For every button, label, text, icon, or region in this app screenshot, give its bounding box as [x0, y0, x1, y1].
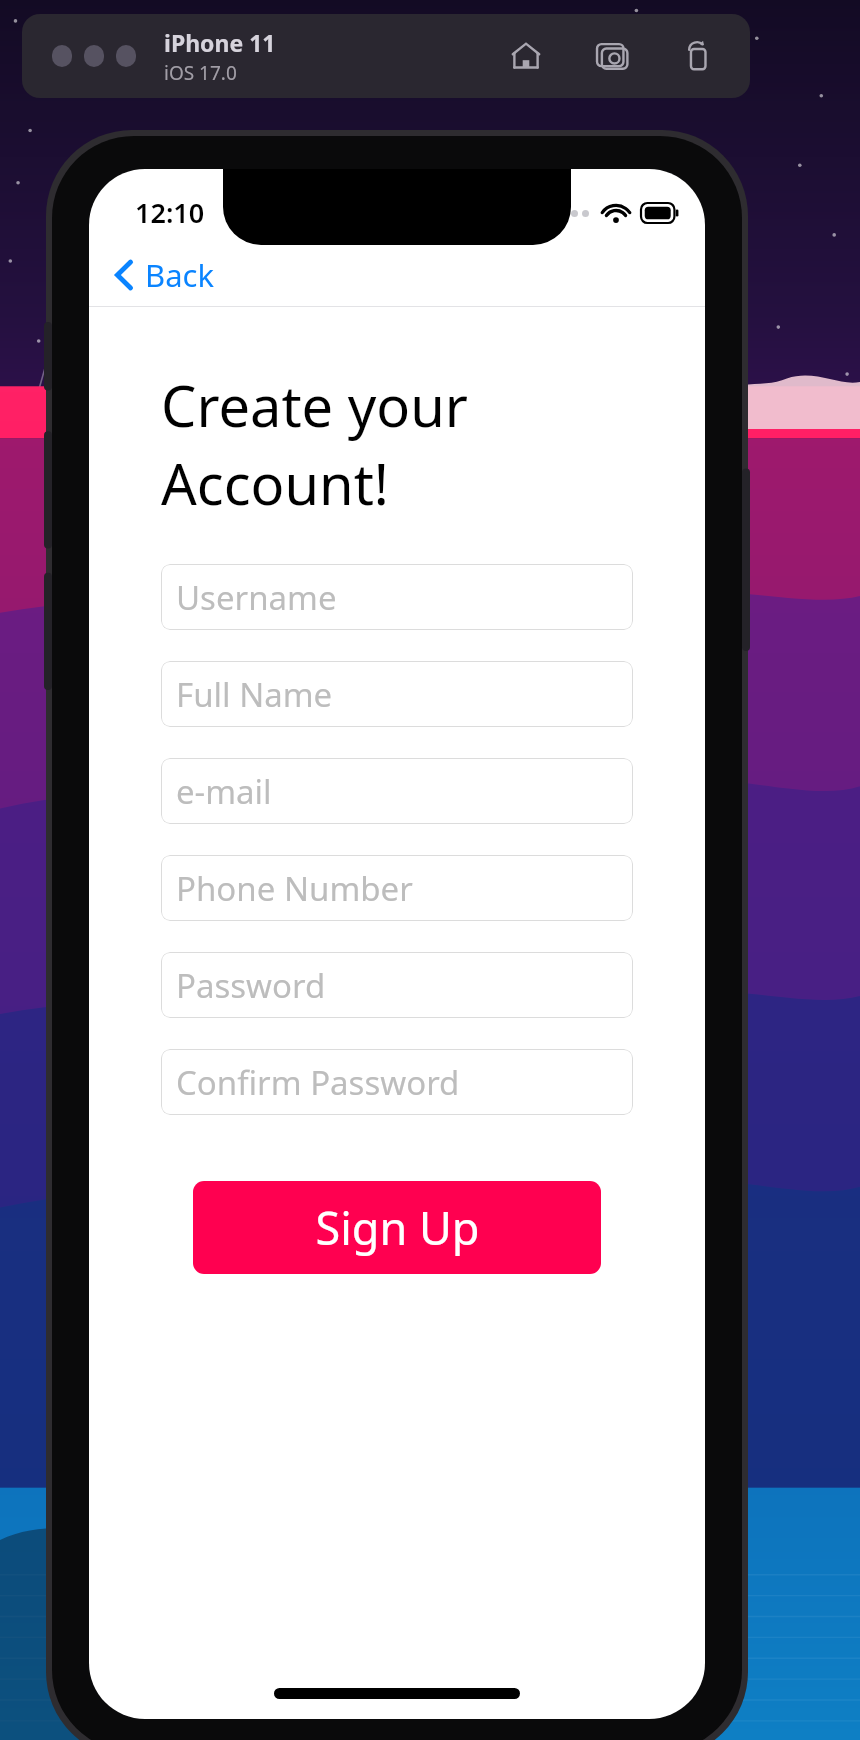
staticText: Sign Up — [315, 1197, 480, 1258]
staticText: Username — [176, 575, 337, 620]
button[interactable]: Password — [161, 952, 633, 1018]
button[interactable]: Confirm Password — [161, 1049, 633, 1115]
staticText: 12:10 — [135, 194, 205, 231]
staticText: Phone Number — [176, 866, 413, 911]
button[interactable]: Full Name — [161, 661, 633, 727]
staticText: iPhone 11 — [164, 27, 276, 58]
staticText: Full Name — [176, 672, 333, 717]
button[interactable]: Window control — [84, 45, 104, 67]
button[interactable]: Rotate device — [676, 34, 720, 78]
button[interactable]: Home — [504, 34, 548, 78]
button[interactable]: e-mail — [161, 758, 633, 824]
staticText: Confirm Password — [176, 1060, 460, 1105]
button[interactable]: Phone Number — [161, 855, 633, 921]
button[interactable]: Window control — [116, 45, 136, 67]
staticText: Create your Account! — [161, 367, 468, 522]
staticText: Password — [176, 963, 326, 1008]
button[interactable]: Sign Up — [193, 1181, 601, 1274]
button[interactable]: Username — [161, 564, 633, 630]
button[interactable]: Screenshot — [590, 34, 634, 78]
button[interactable]: Back — [103, 248, 224, 302]
staticText: Back — [145, 254, 214, 296]
staticText: iOS 17.0 — [164, 60, 237, 86]
staticText: e-mail — [176, 769, 272, 814]
button[interactable]: Window control — [52, 45, 72, 67]
